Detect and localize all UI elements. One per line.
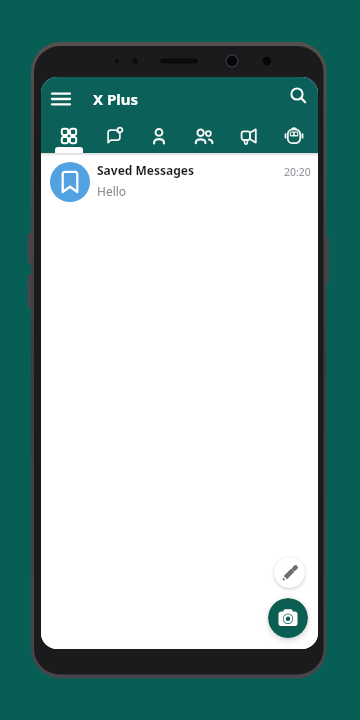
staticText: X Plus [93, 89, 139, 109]
button[interactable] [91, 119, 136, 153]
button[interactable] [271, 119, 316, 153]
button[interactable] [181, 119, 226, 153]
staticText: Hello [97, 183, 127, 199]
button[interactable] [268, 598, 308, 638]
staticText: 20:20 [284, 165, 311, 179]
button[interactable]: Saved Messages [41, 153, 318, 210]
button[interactable] [226, 119, 271, 153]
staticText: Saved Messages [97, 162, 195, 178]
button[interactable] [285, 82, 313, 110]
button[interactable] [47, 85, 75, 113]
button[interactable] [136, 119, 181, 153]
button[interactable] [274, 557, 305, 588]
button[interactable] [47, 119, 91, 153]
